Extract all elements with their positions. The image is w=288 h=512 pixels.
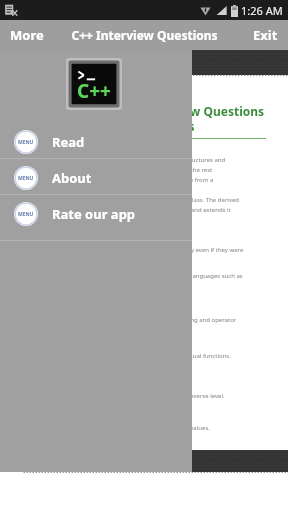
staticText: MENU <box>18 175 34 182</box>
staticText: MENU <box>18 139 34 146</box>
staticText: MENU <box>18 211 34 218</box>
staticText: hides implementation from the rest <box>112 166 213 174</box>
button[interactable]: More <box>0 20 54 50</box>
staticText: Objects behave the right way even if the… <box>112 246 244 254</box>
staticText: C++ Interview Questions and Answers <box>118 103 288 134</box>
button[interactable]: Exit <box>243 20 288 50</box>
staticText: Encapsulation binds data structures and <box>112 156 226 164</box>
staticText: Constructors cannot return values. <box>112 424 210 432</box>
button[interactable]: MENU <box>0 198 192 230</box>
staticText: A virtual table is used for virtual func… <box>112 352 231 360</box>
staticText: C++ <box>77 78 111 104</box>
button[interactable]: MENU <box>0 126 192 158</box>
staticText: Templates are supported in languages suc… <box>112 272 243 280</box>
staticText: Destructors are invoked in reverse level… <box>112 392 225 400</box>
staticText: class derived from another class. The de… <box>112 196 240 204</box>
staticText: class inherits the base class and extend… <box>112 206 231 214</box>
button[interactable]: App icon <box>66 58 122 110</box>
staticText: Exit <box>253 26 278 44</box>
staticText: 1:26 AM <box>241 3 283 18</box>
staticText: C++ Interview Questions <box>71 27 218 43</box>
staticText: Read <box>52 133 85 151</box>
staticText: More <box>10 26 44 44</box>
staticText: with its own attributes. <box>112 216 177 224</box>
staticText: separating interface revenue from a <box>112 176 214 184</box>
button[interactable]: MENU <box>0 162 192 194</box>
staticText: About <box>52 169 92 187</box>
staticText: Rate our app <box>52 205 136 223</box>
staticText: Supports function overloading and operat… <box>112 316 237 324</box>
